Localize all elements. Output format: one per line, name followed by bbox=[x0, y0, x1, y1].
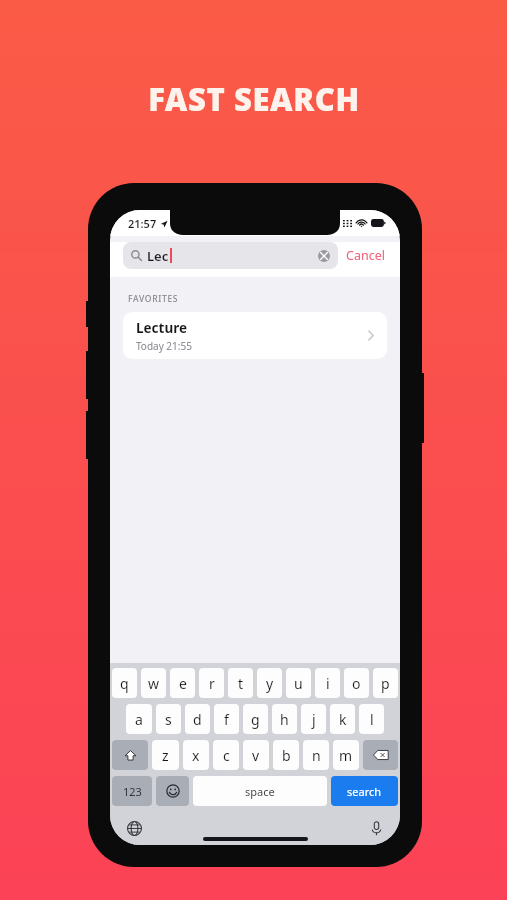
button[interactable]: f bbox=[214, 704, 239, 734]
button[interactable]: Backspace bbox=[363, 740, 398, 770]
staticText: v bbox=[252, 746, 260, 765]
button[interactable]: x bbox=[183, 740, 209, 770]
button[interactable]: a bbox=[126, 704, 152, 734]
button[interactable]: v bbox=[243, 740, 269, 770]
button[interactable]: Lecture bbox=[123, 312, 387, 359]
staticText: x bbox=[192, 746, 200, 765]
staticText: Cancel bbox=[346, 247, 385, 264]
button[interactable]: t bbox=[228, 668, 253, 698]
staticText: f bbox=[224, 710, 229, 729]
staticText: a bbox=[135, 710, 143, 729]
staticText: u bbox=[294, 674, 303, 693]
button[interactable]: d bbox=[185, 704, 210, 734]
staticText: p bbox=[381, 674, 390, 693]
button[interactable]: n bbox=[303, 740, 329, 770]
staticText: n bbox=[312, 746, 321, 765]
button[interactable]: q bbox=[112, 668, 137, 698]
staticText: w bbox=[148, 674, 160, 693]
staticText: k bbox=[339, 710, 347, 729]
button[interactable]: g bbox=[243, 704, 268, 734]
staticText: 21:57 bbox=[128, 216, 157, 231]
button[interactable]: Clear search bbox=[318, 250, 330, 262]
button[interactable]: u bbox=[286, 668, 311, 698]
button[interactable]: s bbox=[156, 704, 181, 734]
button[interactable]: b bbox=[273, 740, 299, 770]
staticText: o bbox=[352, 674, 361, 693]
button[interactable]: Change keyboard bbox=[124, 818, 144, 838]
staticText: e bbox=[179, 674, 187, 693]
button[interactable]: 123 bbox=[112, 776, 152, 806]
staticText: s bbox=[165, 710, 172, 729]
staticText: Lecture bbox=[136, 319, 188, 337]
button[interactable]: Emoji bbox=[156, 776, 189, 806]
button[interactable]: l bbox=[359, 704, 384, 734]
button[interactable]: p bbox=[373, 668, 398, 698]
button[interactable]: e bbox=[170, 668, 195, 698]
staticText: c bbox=[223, 746, 230, 765]
staticText: FAST SEARCH bbox=[148, 78, 360, 120]
staticText: Lec bbox=[147, 247, 169, 265]
staticText: g bbox=[251, 710, 260, 729]
staticText: z bbox=[162, 746, 169, 765]
staticText: t bbox=[238, 674, 244, 693]
staticText: j bbox=[312, 710, 316, 729]
staticText: Today 21:55 bbox=[136, 339, 192, 353]
button[interactable]: y bbox=[257, 668, 282, 698]
button[interactable]: h bbox=[272, 704, 297, 734]
staticText: search bbox=[347, 784, 382, 799]
button[interactable]: w bbox=[141, 668, 166, 698]
button[interactable]: j bbox=[301, 704, 326, 734]
staticText: h bbox=[280, 710, 289, 729]
staticText: q bbox=[120, 674, 129, 693]
button[interactable]: k bbox=[330, 704, 355, 734]
staticText: FAVORITES bbox=[128, 293, 179, 305]
button[interactable]: m bbox=[333, 740, 359, 770]
button[interactable]: search bbox=[331, 776, 398, 806]
button[interactable]: Lec bbox=[123, 242, 338, 269]
staticText: y bbox=[266, 674, 274, 693]
staticText: l bbox=[370, 710, 374, 729]
button[interactable]: z bbox=[152, 740, 179, 770]
staticText: b bbox=[282, 746, 291, 765]
staticText: d bbox=[193, 710, 202, 729]
button[interactable]: c bbox=[213, 740, 239, 770]
staticText: i bbox=[326, 674, 330, 693]
staticText: m bbox=[339, 746, 353, 765]
staticText: r bbox=[209, 674, 215, 693]
button[interactable]: Cancel bbox=[338, 243, 387, 268]
button[interactable]: Dictate bbox=[366, 818, 386, 838]
button[interactable]: r bbox=[199, 668, 224, 698]
button[interactable]: space bbox=[193, 776, 327, 806]
staticText: space bbox=[245, 784, 275, 799]
staticText: 123 bbox=[123, 784, 142, 799]
button[interactable]: o bbox=[344, 668, 369, 698]
button[interactable]: i bbox=[315, 668, 340, 698]
button[interactable]: Shift bbox=[112, 740, 148, 770]
